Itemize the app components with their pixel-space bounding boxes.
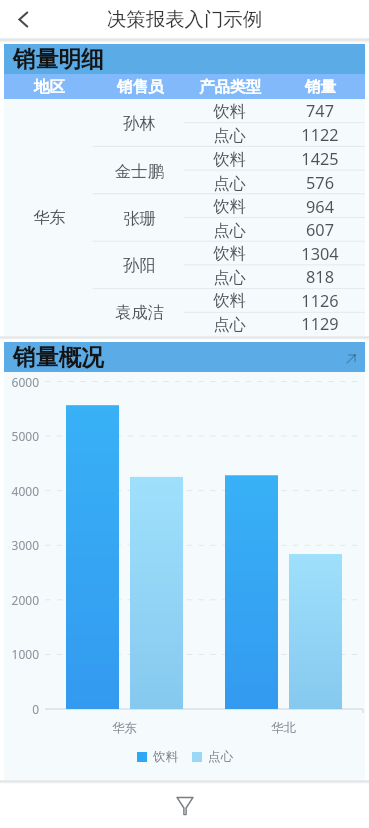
staticText: 销量概况 [13,343,104,372]
button[interactable]: 点心 [184,123,274,147]
staticText: 孙阳 [123,255,156,276]
button[interactable]: 点心 [184,312,274,336]
staticText: 饮料 [213,243,246,264]
staticText: 2000 [4,592,39,608]
button[interactable]: 销量 [275,74,365,99]
button[interactable]: 1129 [274,312,365,336]
button[interactable]: 销售员 [95,74,185,99]
staticText: 1129 [301,313,339,335]
button[interactable]: 华东 [4,99,94,336]
staticText: 1126 [301,290,339,312]
button[interactable]: 点心 [184,265,274,289]
button[interactable]: 点心 [184,218,274,242]
staticText: 产品类型 [199,77,261,97]
button[interactable]: 孙阳 [94,242,184,289]
button[interactable]: 饮料 [184,242,274,265]
button[interactable]: 张珊 [94,195,184,242]
staticText: 点心 [213,173,246,194]
button[interactable]: 1304 [274,242,365,265]
staticText: 华东 [112,720,137,736]
staticText: 1304 [301,243,339,265]
staticText: 点心 [213,220,246,241]
staticText: 金士鹏 [115,161,164,182]
staticText: 饮料 [213,290,246,311]
staticText: 4000 [4,483,39,499]
button[interactable]: Back [4,0,42,38]
staticText: 孙林 [123,113,156,134]
staticText: 销量明细 [13,45,104,74]
staticText: 964 [306,196,334,218]
button[interactable]: 饮料 [137,749,178,765]
staticText: 5000 [4,428,39,444]
button[interactable]: 袁成洁 [94,289,184,336]
staticText: 销量 [305,77,336,97]
staticText: 地区 [34,77,65,97]
button[interactable]: 点心 [192,749,233,765]
button[interactable]: 饮料 [184,99,274,123]
staticText: 6000 [4,374,39,390]
staticText: 点心 [213,125,246,146]
button[interactable]: 576 [274,171,365,195]
button[interactable]: 金士鹏 [94,147,184,195]
button[interactable]: Expand [341,349,361,369]
button[interactable]: 964 [274,195,365,218]
staticText: 576 [306,172,334,194]
staticText: 818 [306,266,334,288]
button[interactable]: 1425 [274,147,365,171]
staticText: 607 [306,219,334,241]
button[interactable]: 饮料 [184,289,274,312]
staticText: 决策报表入门示例 [107,7,263,31]
button[interactable]: 销量概况 [4,342,365,372]
staticText: 3000 [4,537,39,553]
button[interactable]: Filter [168,789,202,823]
staticText: 饮料 [213,149,246,170]
staticText: 1000 [4,646,39,662]
button[interactable]: 销量明细 [4,44,365,74]
staticText: 饮料 [213,101,246,122]
button[interactable]: 产品类型 [185,74,275,99]
button[interactable]: 747 [274,99,365,123]
staticText: 饮料 [213,196,246,217]
staticText: 销售员 [117,77,164,97]
staticText: 点心 [213,267,246,288]
button[interactable]: 孙林 [94,99,184,147]
button[interactable]: 1126 [274,289,365,312]
button[interactable]: 地区 [4,74,95,99]
staticText: 1425 [301,148,339,170]
staticText: 饮料 [153,749,178,765]
button[interactable]: 1122 [274,123,365,147]
button[interactable]: 点心 [184,171,274,195]
button[interactable]: 饮料 [184,195,274,218]
staticText: 747 [306,100,334,122]
button[interactable]: 607 [274,218,365,242]
staticText: 点心 [213,314,246,335]
staticText: 0 [4,701,39,717]
staticText: 袁成洁 [115,302,164,323]
staticText: 1122 [301,124,339,146]
staticText: 点心 [208,749,233,765]
staticText: 华北 [271,720,296,736]
button[interactable]: 饮料 [184,147,274,171]
staticText: 华东 [33,207,66,228]
staticText: 张珊 [123,208,156,229]
button[interactable]: 818 [274,265,365,289]
